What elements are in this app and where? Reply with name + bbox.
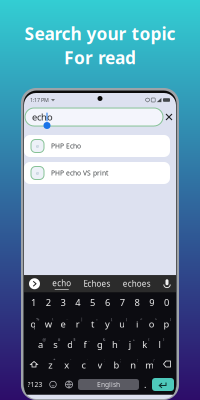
button[interactable]: - [107, 333, 122, 354]
staticText: b [114, 359, 120, 371]
button[interactable]: > [144, 313, 159, 333]
button[interactable]: ?123 [26, 374, 44, 395]
staticText: ? [153, 357, 155, 363]
staticText: [ [111, 316, 112, 322]
button[interactable]: _ [78, 333, 93, 354]
staticText: . [144, 378, 147, 391]
staticText: = [96, 316, 98, 322]
staticText: 6 [105, 296, 110, 309]
staticText: 5 [90, 296, 95, 309]
staticText: 2 [46, 296, 51, 309]
button[interactable]: = [85, 313, 100, 333]
staticText: @ [42, 337, 46, 342]
staticText: ~ [66, 316, 68, 322]
button[interactable]: Backspace [158, 354, 174, 374]
button[interactable]: Voice input [163, 278, 171, 289]
button[interactable]: 5 [85, 292, 100, 313]
button[interactable]: ' [75, 354, 92, 374]
button[interactable]: 8 [130, 292, 144, 313]
button[interactable]: 9 [144, 292, 159, 313]
staticText: a [38, 338, 43, 351]
button[interactable]: Clear search [163, 108, 175, 126]
button[interactable]: 3 [56, 292, 70, 313]
button[interactable]: @ [33, 333, 48, 354]
button[interactable]: + [122, 333, 137, 354]
button[interactable]: Emoji [46, 374, 60, 395]
button[interactable]: 4 [70, 292, 85, 313]
staticText: r [76, 318, 80, 330]
button[interactable]: Change keyboard language [62, 374, 76, 395]
staticText: p [164, 318, 170, 330]
staticText: m [145, 359, 154, 371]
button[interactable]: Enter [152, 378, 174, 391]
button[interactable]: { [159, 313, 174, 333]
button[interactable]: 6 [100, 292, 115, 313]
staticText: i [136, 318, 138, 330]
staticText: echo [32, 111, 53, 123]
staticText: x [64, 359, 69, 371]
staticText: s [53, 338, 57, 351]
button[interactable]: & [93, 333, 107, 354]
staticText: PHP echo VS print [51, 169, 108, 177]
staticText: For read [64, 46, 136, 69]
button[interactable]: 7 [115, 292, 130, 313]
button[interactable]: ( [137, 333, 152, 354]
button[interactable]: ? [141, 354, 158, 374]
button[interactable]: Shift [26, 354, 42, 374]
staticText: * [53, 357, 55, 363]
staticText: English [97, 380, 120, 389]
button[interactable]: e [24, 135, 170, 157]
button[interactable]: | [70, 313, 85, 333]
staticText: + [133, 337, 135, 342]
staticText: o [149, 318, 155, 330]
staticText: ' [87, 357, 88, 363]
button[interactable]: " [59, 354, 75, 374]
button[interactable]: ! [125, 354, 141, 374]
staticText: < [140, 316, 142, 322]
staticText: Search your topic [24, 22, 175, 45]
button[interactable]: 1 [26, 292, 41, 313]
button[interactable]: echo [52, 278, 71, 290]
button[interactable]: : [92, 354, 108, 374]
button[interactable]: ; [108, 354, 125, 374]
staticText: $ [73, 337, 75, 342]
button[interactable]: [ [100, 313, 115, 333]
staticText: d [67, 338, 73, 351]
staticText: # [58, 337, 61, 342]
button[interactable]: ] [115, 313, 130, 333]
button[interactable]: e [24, 162, 170, 184]
button[interactable]: # [48, 333, 63, 354]
staticText: e [36, 142, 39, 150]
button[interactable]: \ [41, 313, 56, 333]
staticText: g [97, 338, 103, 351]
staticText: j [129, 338, 131, 351]
button[interactable]: % [26, 313, 41, 333]
staticText: v [97, 359, 102, 371]
staticText: ; [120, 357, 121, 363]
button[interactable]: 2 [41, 292, 56, 313]
staticText: n [130, 359, 136, 371]
staticText: echoes [123, 278, 151, 289]
button[interactable]: 0 [159, 292, 174, 313]
button[interactable]: echo [25, 108, 163, 126]
button[interactable]: $ [63, 333, 78, 354]
staticText: echo [52, 278, 71, 288]
staticText: 1 [31, 296, 36, 309]
staticText: e [36, 169, 39, 177]
button[interactable]: ) [152, 333, 167, 354]
button[interactable]: * [42, 354, 59, 374]
button[interactable]: Period [141, 374, 150, 395]
staticText: _ [88, 337, 90, 342]
button[interactable]: Echoes [83, 278, 110, 289]
staticText: q [30, 318, 36, 330]
staticText: Echoes [83, 278, 110, 289]
staticText: ) [163, 337, 164, 342]
staticText: & [102, 337, 105, 342]
staticText: ] [126, 316, 127, 322]
staticText: " [70, 357, 72, 363]
button[interactable]: ~ [56, 313, 70, 333]
staticText: f [84, 338, 87, 351]
button[interactable]: < [130, 313, 144, 333]
button[interactable]: echoes [123, 278, 151, 289]
button[interactable]: English [78, 379, 139, 390]
